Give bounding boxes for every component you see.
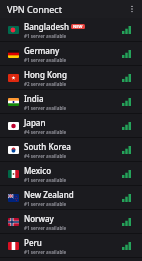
staticText: #1 server available — [24, 57, 67, 63]
staticText: Hong Kong — [24, 69, 67, 80]
button[interactable]: Signal strength — [120, 23, 133, 36]
staticText: #1 server available — [24, 105, 67, 111]
button[interactable]: Hong Kong — [0, 66, 142, 89]
staticText: Norway — [24, 213, 54, 224]
button[interactable]: Bangladesh — [0, 18, 142, 41]
staticText: #1 server available — [24, 33, 67, 39]
button[interactable]: Mexico — [0, 162, 142, 185]
staticText: #4 server available — [24, 129, 67, 135]
button[interactable]: Signal strength — [120, 167, 133, 180]
button[interactable]: New Zealand — [0, 186, 142, 209]
staticText: South Korea — [24, 141, 71, 152]
staticText: Bangladesh — [24, 21, 69, 32]
button[interactable]: More options — [124, 1, 140, 17]
button[interactable]: Signal strength — [120, 215, 133, 228]
button[interactable]: Signal strength — [120, 239, 133, 252]
button[interactable]: Germany — [0, 42, 142, 65]
button[interactable]: India — [0, 90, 142, 113]
button[interactable]: South Korea — [0, 138, 142, 161]
button[interactable]: Japan — [0, 114, 142, 137]
button[interactable]: Norway — [0, 210, 142, 233]
staticText: New Zealand — [24, 189, 74, 200]
staticText: Germany — [24, 45, 60, 56]
staticText: Japan — [24, 117, 46, 128]
staticText: #4 server available — [24, 153, 67, 159]
button[interactable]: Signal strength — [120, 95, 133, 108]
staticText: #2 server available — [24, 81, 67, 87]
staticText: #1 server available — [24, 249, 67, 255]
staticText: #1 server available — [24, 201, 67, 207]
button[interactable]: Signal strength — [120, 71, 133, 84]
staticText: #1 server available — [24, 177, 67, 183]
button[interactable]: Signal strength — [120, 191, 133, 204]
button[interactable]: Signal strength — [120, 119, 133, 132]
staticText: VPN Connect — [7, 3, 62, 15]
staticText: #1 server available — [24, 225, 67, 231]
button[interactable]: Peru — [0, 234, 142, 257]
staticText: Mexico — [24, 165, 52, 176]
staticText: India — [24, 93, 44, 104]
button[interactable]: Signal strength — [120, 47, 133, 60]
staticText: NEW — [73, 24, 83, 29]
staticText: Peru — [24, 237, 42, 248]
button[interactable]: Signal strength — [120, 143, 133, 156]
